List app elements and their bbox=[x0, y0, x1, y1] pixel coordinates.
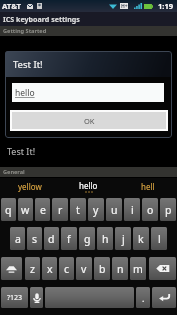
button[interactable]: Space bbox=[45, 287, 134, 308]
button[interactable]: y bbox=[88, 198, 104, 221]
staticText: . bbox=[142, 292, 145, 304]
button[interactable]: g bbox=[79, 227, 95, 250]
button[interactable]: hello bbox=[12, 83, 164, 102]
button[interactable]: Period bbox=[136, 287, 150, 308]
staticText: w bbox=[21, 203, 30, 217]
button[interactable]: Backspace bbox=[149, 257, 176, 280]
staticText: b bbox=[99, 262, 106, 276]
staticText: Getting Started bbox=[3, 27, 47, 35]
staticText: q bbox=[5, 203, 12, 217]
button[interactable]: p bbox=[160, 198, 176, 221]
staticText: AT&T bbox=[2, 1, 22, 12]
staticText: o bbox=[147, 203, 154, 217]
button[interactable]: Shift bbox=[1, 257, 22, 280]
button[interactable]: hell bbox=[118, 178, 177, 195]
button[interactable]: j bbox=[115, 227, 131, 250]
staticText: s bbox=[32, 232, 38, 246]
button[interactable]: Voice input bbox=[30, 287, 43, 308]
staticText: m bbox=[133, 262, 143, 276]
staticText: H+ bbox=[121, 3, 128, 9]
button[interactable]: x bbox=[42, 257, 57, 280]
button[interactable]: OK bbox=[12, 112, 166, 129]
staticText: Test It! bbox=[13, 58, 43, 71]
button[interactable]: hello bbox=[59, 178, 118, 195]
button[interactable]: f bbox=[61, 227, 77, 250]
staticText: d bbox=[48, 232, 55, 246]
staticText: x bbox=[47, 262, 53, 276]
button[interactable]: s bbox=[27, 227, 42, 250]
staticText: hello bbox=[15, 87, 35, 99]
button[interactable]: n bbox=[112, 257, 128, 280]
staticText: r bbox=[58, 203, 63, 217]
button[interactable]: h bbox=[97, 227, 113, 250]
button[interactable]: yellow bbox=[0, 178, 59, 195]
button[interactable]: z bbox=[25, 257, 40, 280]
staticText: g bbox=[84, 232, 91, 246]
button[interactable]: u bbox=[106, 198, 122, 221]
staticText: p bbox=[165, 203, 172, 217]
button[interactable]: ICS keyboard settings bbox=[0, 12, 177, 26]
staticText: Test It! bbox=[7, 145, 36, 157]
staticText: v bbox=[81, 262, 87, 276]
staticText: k bbox=[138, 232, 144, 246]
button[interactable]: a bbox=[10, 227, 25, 250]
staticText: ?123 bbox=[7, 293, 23, 303]
button[interactable]: q bbox=[1, 198, 16, 221]
button[interactable]: t bbox=[70, 198, 86, 221]
staticText: u bbox=[111, 203, 118, 217]
button[interactable]: b bbox=[94, 257, 110, 280]
staticText: 1:19 bbox=[158, 1, 173, 11]
button[interactable]: Enter bbox=[152, 287, 176, 308]
button[interactable]: l bbox=[151, 227, 167, 250]
button[interactable]: k bbox=[133, 227, 149, 250]
button[interactable]: d bbox=[44, 227, 59, 250]
staticText: f bbox=[67, 232, 71, 246]
button[interactable]: ?123 bbox=[1, 287, 28, 308]
button[interactable]: r bbox=[52, 198, 68, 221]
button[interactable]: i bbox=[124, 198, 140, 221]
button[interactable]: m bbox=[130, 257, 146, 280]
staticText: yellow bbox=[18, 181, 42, 192]
staticText: ICS keyboard settings bbox=[3, 14, 80, 24]
staticText: t bbox=[76, 203, 80, 217]
button[interactable]: c bbox=[59, 257, 74, 280]
staticText: hello bbox=[79, 180, 98, 191]
button[interactable]: o bbox=[142, 198, 158, 221]
staticText: i bbox=[131, 203, 134, 217]
staticText: c bbox=[64, 262, 70, 276]
button[interactable]: w bbox=[18, 198, 33, 221]
button[interactable]: e bbox=[35, 198, 50, 221]
staticText: General bbox=[3, 168, 25, 176]
staticText: j bbox=[122, 232, 125, 246]
staticText: n bbox=[117, 262, 124, 276]
staticText: a bbox=[15, 232, 21, 246]
staticText: l bbox=[158, 232, 161, 246]
staticText: OK bbox=[84, 116, 95, 126]
button[interactable]: v bbox=[76, 257, 92, 280]
staticText: h bbox=[102, 232, 109, 246]
staticText: hell bbox=[141, 181, 155, 192]
staticText: y bbox=[93, 203, 99, 217]
staticText: z bbox=[30, 262, 35, 276]
staticText: e bbox=[40, 203, 46, 217]
